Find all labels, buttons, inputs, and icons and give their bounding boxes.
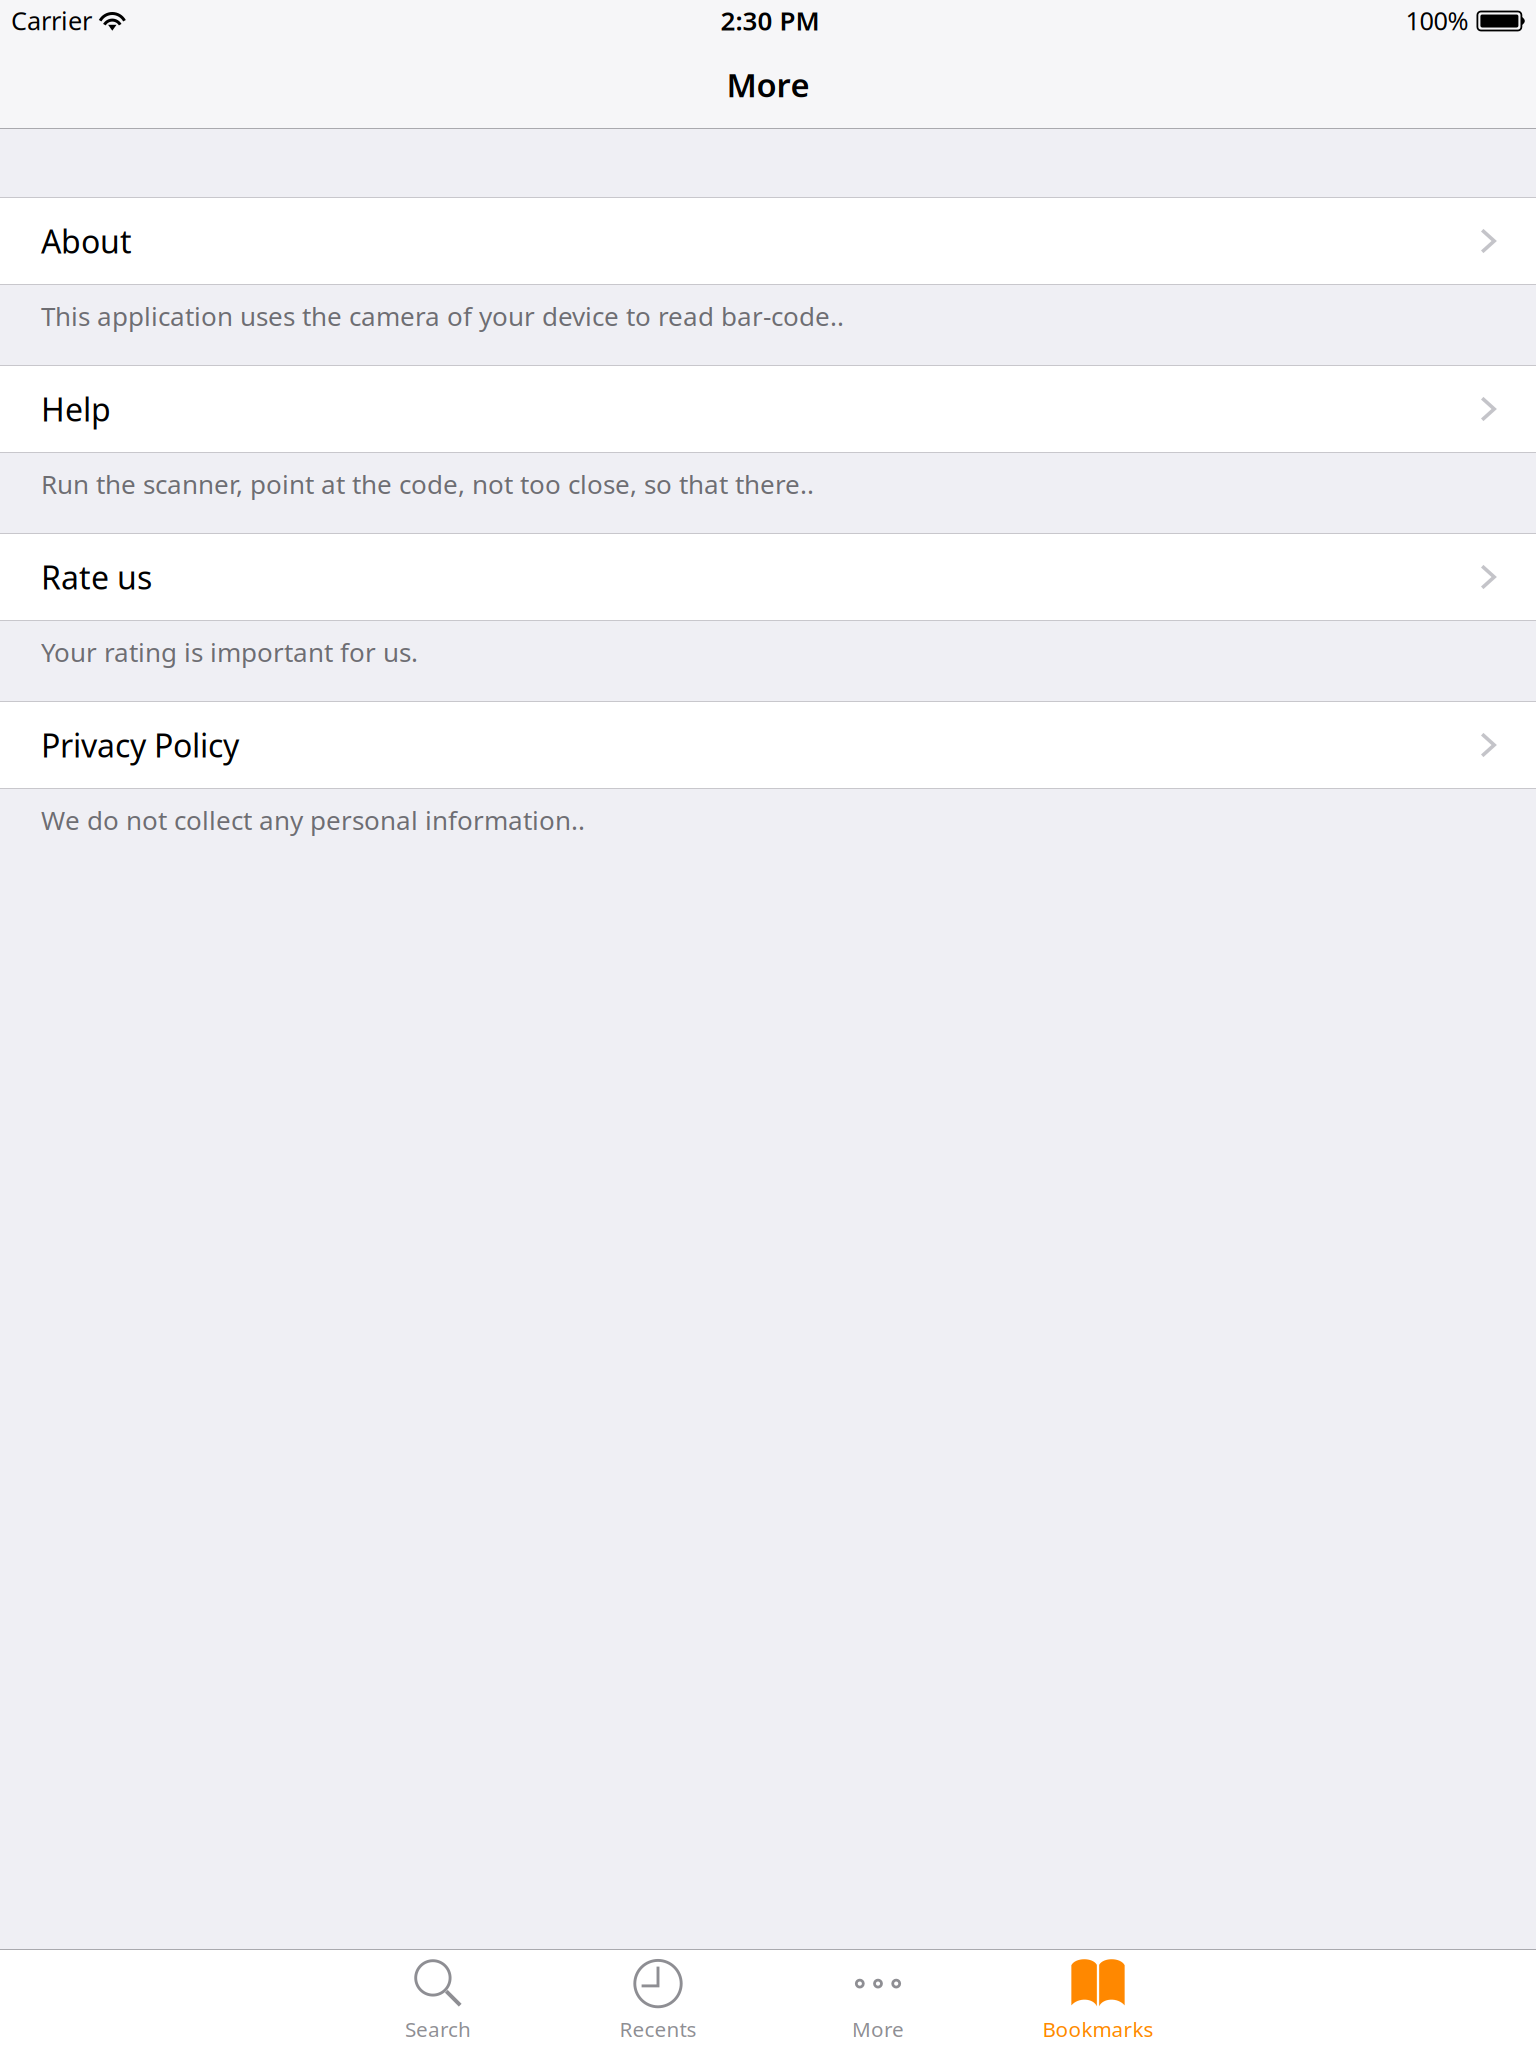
button[interactable]: Help: [0, 366, 1536, 452]
staticText: More: [852, 2015, 904, 2043]
button[interactable]: Search: [328, 1950, 548, 2048]
staticText: Run the scanner, point at the code, not …: [41, 466, 814, 502]
staticText: Help: [41, 387, 111, 431]
staticText: Search: [405, 2015, 471, 2043]
staticText: Rate us: [41, 555, 152, 599]
staticText: Carrier: [11, 3, 92, 38]
staticText: More: [726, 62, 809, 107]
button[interactable]: More: [768, 1950, 988, 2048]
button[interactable]: Bookmarks: [988, 1950, 1208, 2048]
button[interactable]: Privacy Policy: [0, 702, 1536, 788]
staticText: We do not collect any personal informati…: [41, 802, 585, 838]
staticText: 100%: [1405, 3, 1468, 38]
button[interactable]: Rate us: [0, 534, 1536, 620]
staticText: 2:30 PM: [720, 3, 819, 38]
staticText: About: [41, 219, 132, 263]
button[interactable]: About: [0, 198, 1536, 284]
button[interactable]: Recents: [548, 1950, 768, 2048]
staticText: Privacy Policy: [41, 723, 239, 767]
staticText: Bookmarks: [1042, 2015, 1153, 2043]
staticText: Your rating is important for us.: [41, 634, 418, 670]
staticText: This application uses the camera of your…: [41, 298, 844, 334]
staticText: Recents: [619, 2015, 696, 2043]
